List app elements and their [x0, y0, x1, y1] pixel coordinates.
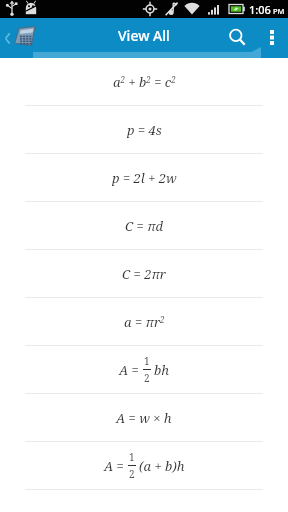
- staticText: p = 4s: [127, 121, 162, 139]
- button[interactable]: a2 + b2 = c2: [0, 58, 288, 105]
- button[interactable]: p = 2l + 2w: [0, 154, 288, 201]
- staticText: a = πr2: [124, 313, 165, 331]
- staticText: p = 2l + 2w: [112, 169, 177, 187]
- staticText: 2: [129, 467, 135, 481]
- staticText: bh: [154, 361, 170, 379]
- staticText: a2 + b2 = c2: [113, 73, 176, 91]
- button[interactable]: Up: [3, 18, 36, 58]
- staticText: A = w × h: [116, 409, 172, 427]
- staticText: C = πd: [125, 217, 164, 235]
- button[interactable]: A =: [0, 442, 288, 489]
- staticText: View All: [118, 26, 170, 45]
- button[interactable]: a = πr2: [0, 298, 288, 345]
- button[interactable]: C = 2πr: [0, 250, 288, 297]
- staticText: (a + b)h: [139, 457, 185, 475]
- staticText: PM: [273, 6, 285, 16]
- staticText: 1:06: [249, 2, 271, 17]
- staticText: 2: [144, 371, 150, 385]
- staticText: C = 2πr: [122, 265, 166, 283]
- staticText: A =: [104, 457, 128, 475]
- staticText: 1: [129, 450, 135, 464]
- staticText: 1: [144, 354, 150, 368]
- button[interactable]: C = πd: [0, 202, 288, 249]
- button[interactable]: A = w × h: [0, 394, 288, 441]
- button[interactable]: A =: [0, 346, 288, 393]
- button[interactable]: More options: [258, 19, 286, 55]
- button[interactable]: Search: [220, 20, 254, 54]
- staticText: A =: [119, 361, 143, 379]
- button[interactable]: p = 4s: [0, 106, 288, 153]
